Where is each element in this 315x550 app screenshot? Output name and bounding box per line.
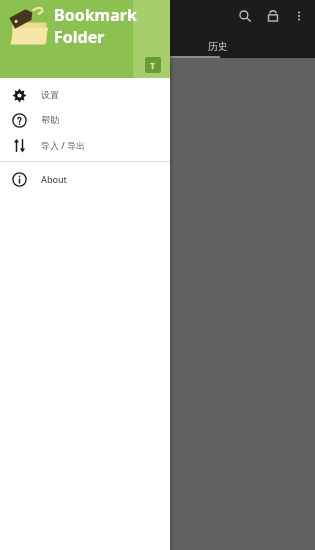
- staticText: Folder: [54, 26, 105, 48]
- button[interactable]: 设置: [0, 82, 170, 107]
- staticText: About: [41, 173, 68, 185]
- staticText: Bookmark: [54, 4, 137, 26]
- button[interactable]: 历史: [170, 34, 266, 58]
- button[interactable]: About: [0, 166, 170, 191]
- staticText: 帮助: [41, 114, 59, 125]
- staticText: T: [150, 59, 156, 71]
- staticText: 设置: [41, 89, 59, 100]
- button[interactable]: Tag: [145, 57, 161, 73]
- staticText: 历史: [208, 40, 228, 53]
- staticText: 导入 / 导出: [41, 139, 86, 151]
- button[interactable]: 帮助: [0, 107, 170, 132]
- button[interactable]: Lock: [259, 2, 287, 30]
- button[interactable]: More options: [287, 4, 311, 28]
- button[interactable]: 导入 / 导出: [0, 132, 170, 157]
- button[interactable]: Search: [231, 2, 259, 30]
